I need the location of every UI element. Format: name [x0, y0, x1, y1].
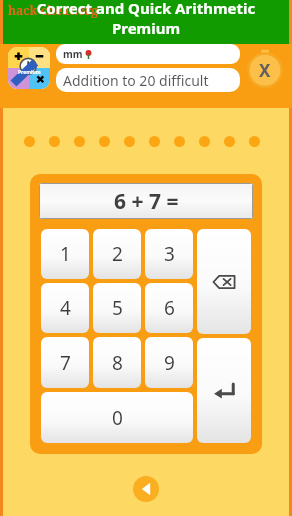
button[interactable]: 7 — [41, 337, 89, 388]
staticText: mm — [63, 47, 83, 61]
button[interactable]: 0 — [41, 392, 193, 443]
staticText: hack-cheat.org — [8, 2, 99, 18]
button[interactable]: Addition to 20 difficult — [56, 68, 240, 92]
button[interactable]: 6 — [145, 283, 193, 333]
button[interactable]: 4 — [41, 283, 89, 333]
staticText: 6 — [164, 295, 175, 321]
staticText: 5 — [112, 295, 123, 321]
staticText: 8 — [112, 350, 123, 376]
staticText: 7 — [60, 350, 71, 376]
staticText: 6 + 7 = — [114, 187, 179, 216]
button[interactable]: 2 — [93, 229, 141, 279]
button[interactable]: Enter — [197, 338, 251, 443]
button[interactable]: Close — [246, 49, 284, 87]
staticText: 2 — [112, 241, 123, 267]
staticText: 3 — [164, 241, 175, 267]
staticText: Addition to 20 difficult — [63, 71, 209, 90]
button[interactable]: Back — [133, 476, 159, 502]
button[interactable]: 9 — [145, 337, 193, 388]
button[interactable]: 5 — [93, 283, 141, 333]
staticText: 9 — [164, 350, 175, 376]
staticText: Correct and Quick Arithmetic Premium — [3, 0, 289, 38]
staticText: 4 — [60, 295, 71, 321]
button[interactable]: Premium — [8, 47, 50, 89]
button[interactable]: Backspace — [197, 229, 251, 334]
staticText: X — [259, 59, 271, 82]
staticText: 0 — [112, 405, 123, 431]
staticText: 1 — [60, 241, 71, 267]
button[interactable]: 8 — [93, 337, 141, 388]
button[interactable]: mm — [56, 44, 240, 64]
button[interactable]: 1 — [41, 229, 89, 279]
button[interactable]: 3 — [145, 229, 193, 279]
staticText: Premium — [18, 69, 41, 76]
